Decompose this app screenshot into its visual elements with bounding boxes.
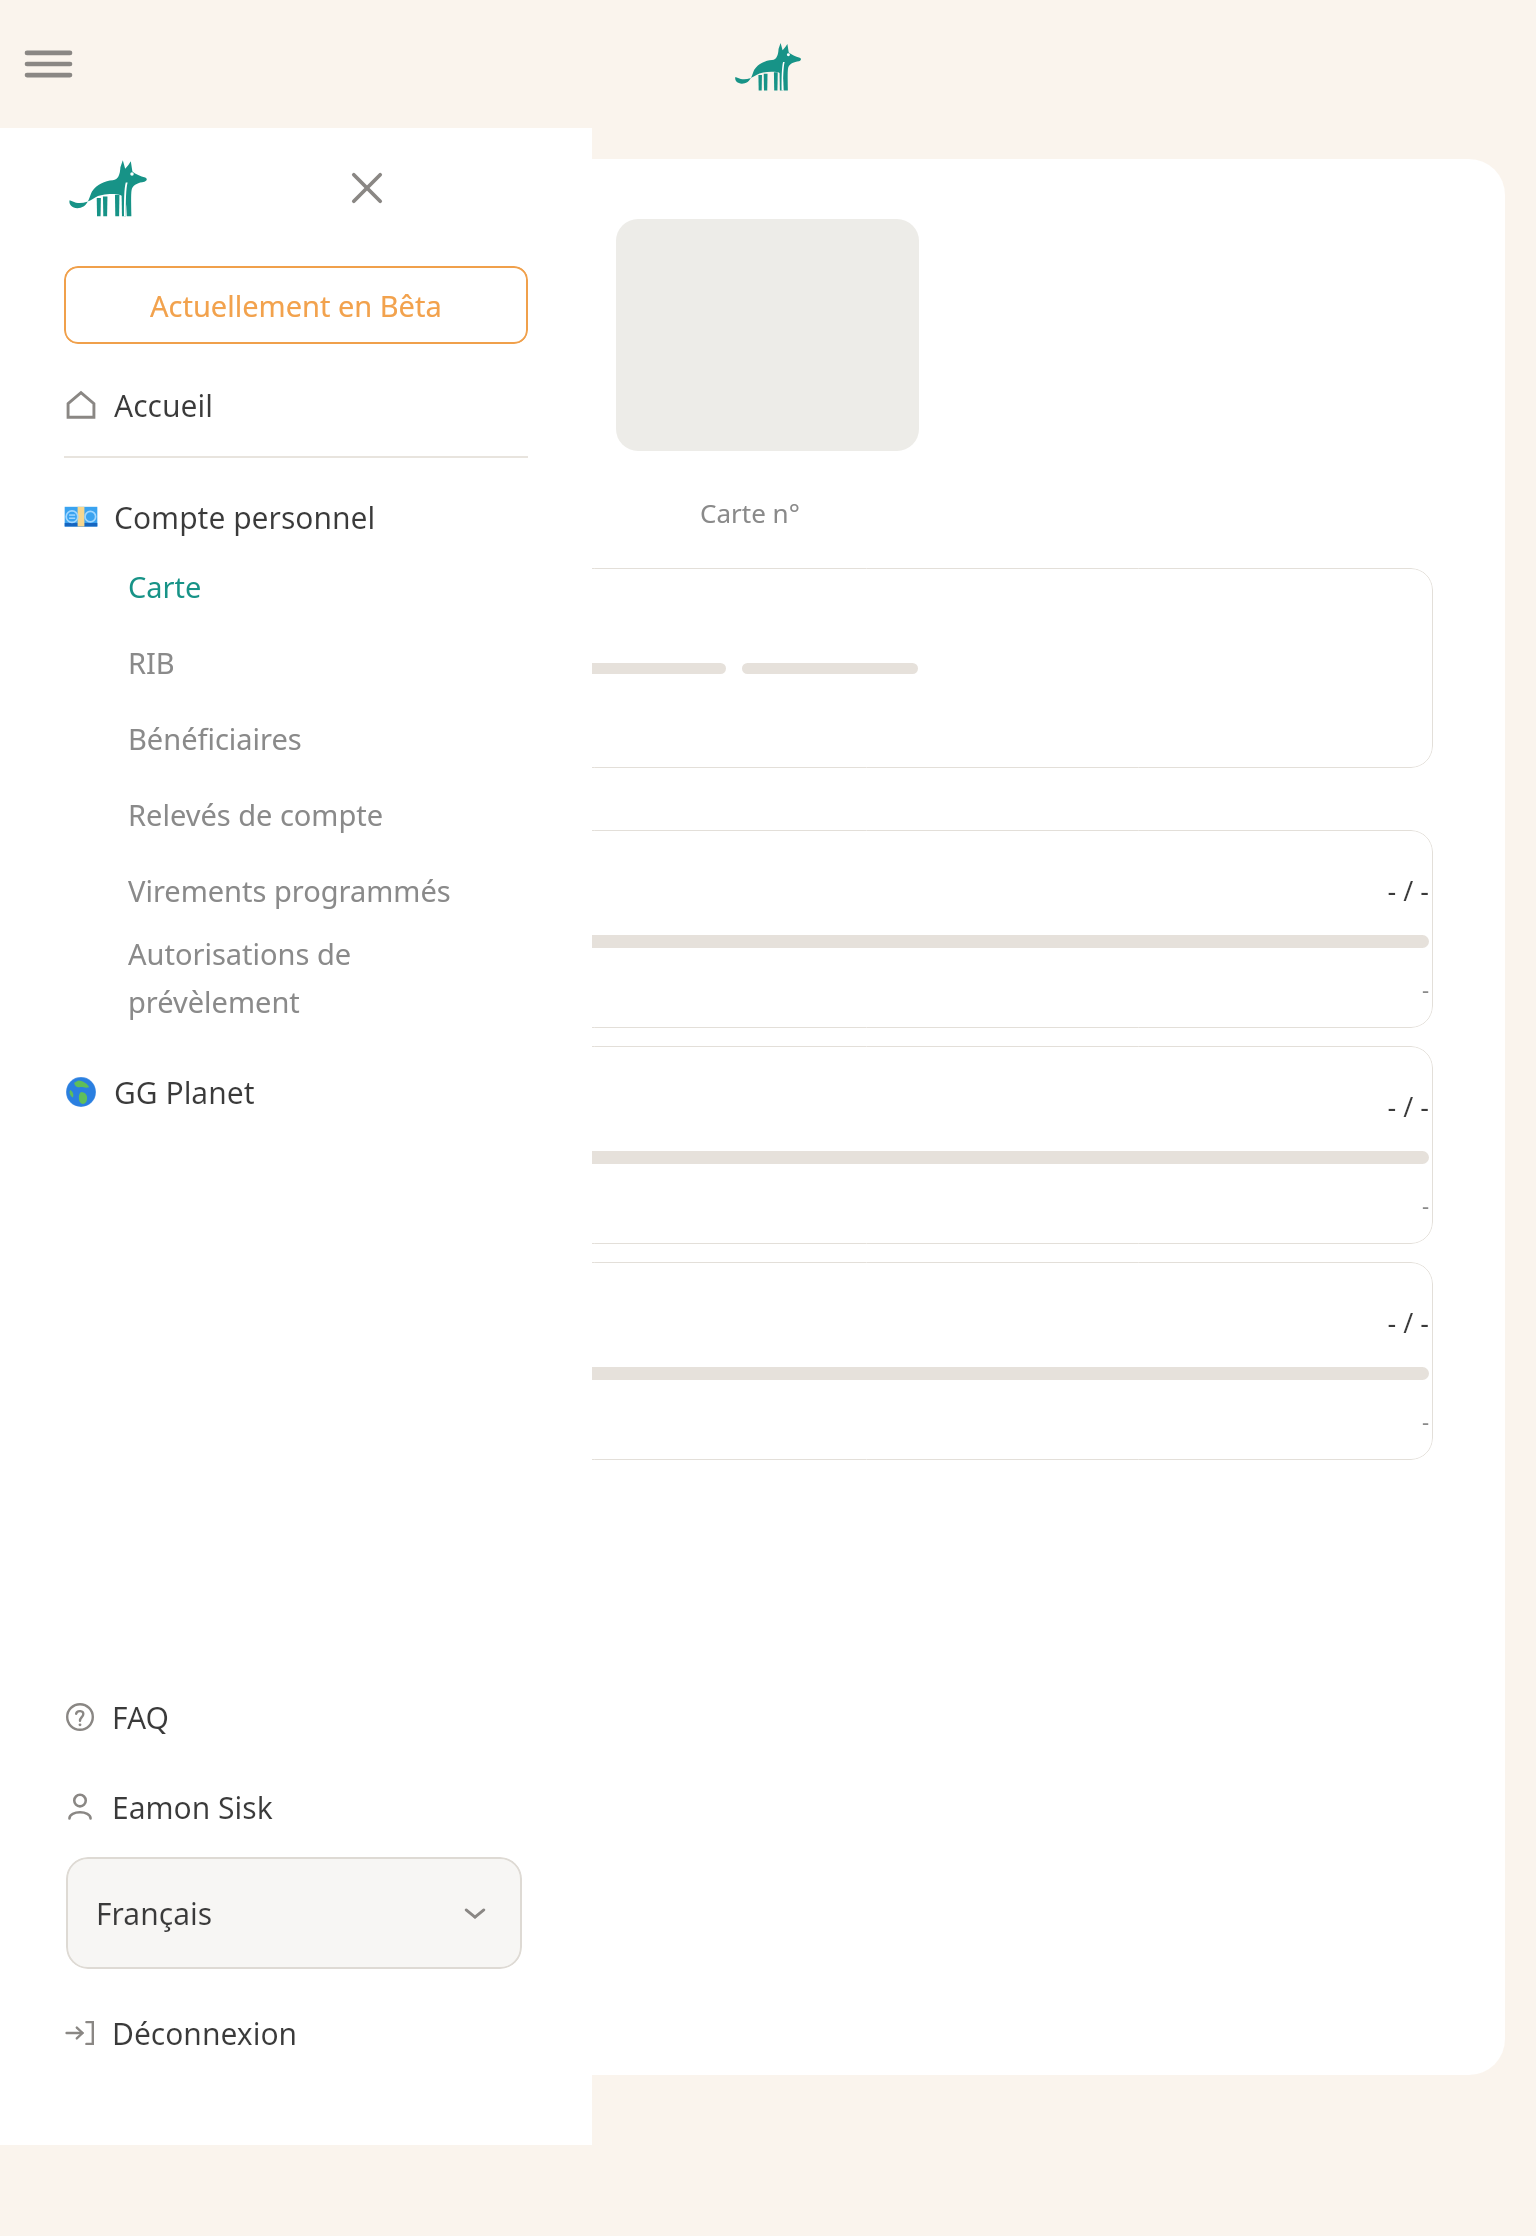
staticText: FAQ — [112, 1697, 169, 1738]
staticText: RIB — [128, 643, 175, 682]
button[interactable]: Eamon Sisk — [64, 1771, 528, 1843]
button[interactable]: GG Planet — [64, 1061, 528, 1123]
staticText: Carte — [128, 567, 202, 606]
button[interactable]: Français — [66, 1857, 522, 1969]
button[interactable]: Compte personnel — [64, 486, 528, 548]
button[interactable]: - / - — [300, 1046, 1433, 1244]
button[interactable] — [300, 568, 1433, 768]
button[interactable]: RIB — [64, 624, 528, 700]
button[interactable]: Actuellement en Bêta — [64, 266, 528, 344]
staticText: GG Planet — [114, 1072, 255, 1113]
button[interactable]: Autorisations de — [128, 928, 528, 1027]
button[interactable]: - / - — [300, 830, 1433, 1028]
staticText: Compte personnel — [114, 497, 376, 538]
button[interactable]: - / - — [300, 1262, 1433, 1460]
button[interactable]: Relevés de compte — [64, 776, 528, 852]
button[interactable]: FAQ — [64, 1681, 528, 1753]
staticText: Déconnexion — [112, 2013, 298, 2054]
staticText: Autorisations de — [128, 934, 352, 973]
staticText: Actuellement en Bêta — [150, 286, 442, 325]
button[interactable]: Fermer le menu — [338, 159, 396, 217]
button[interactable]: Bénéficiaires — [64, 700, 528, 776]
staticText: Eamon Sisk — [112, 1787, 273, 1828]
staticText: Relevés de compte — [128, 795, 384, 834]
button[interactable]: Menu — [20, 36, 76, 92]
staticText: - / - — [304, 872, 1429, 909]
staticText: - / - — [304, 1304, 1429, 1341]
button[interactable]: Déconnexion — [64, 1997, 528, 2069]
button[interactable]: Accueil — [64, 368, 528, 442]
button[interactable]: Carte — [64, 548, 528, 624]
staticText: Français — [96, 1893, 213, 1934]
staticText: Virements programmés — [128, 871, 451, 910]
staticText: prévèlement — [128, 982, 300, 1021]
button[interactable]: Virements programmés — [64, 852, 528, 928]
staticText: Carte n° — [700, 495, 800, 530]
staticText: Bénéficiaires — [128, 719, 302, 758]
staticText: - / - — [304, 1088, 1429, 1125]
staticText: Accueil — [114, 385, 213, 426]
